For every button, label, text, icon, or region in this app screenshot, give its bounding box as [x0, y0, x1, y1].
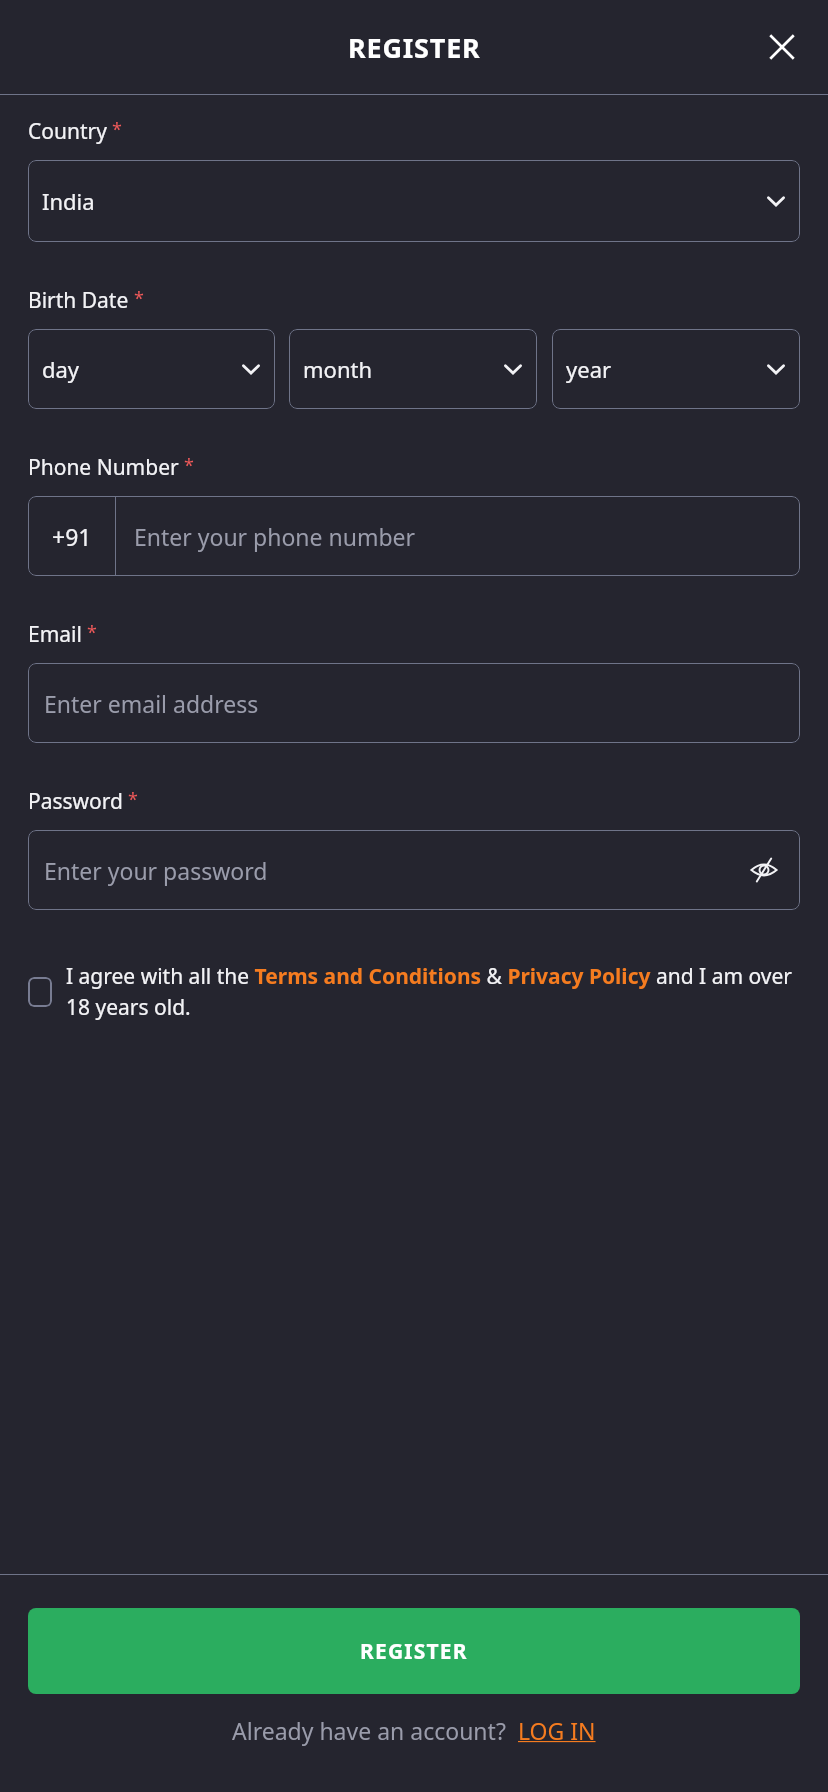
staticText: +91 — [52, 521, 92, 552]
button[interactable]: REGISTER — [28, 1608, 800, 1694]
staticText: REGISTER — [348, 29, 481, 66]
staticText: Enter your phone number — [134, 521, 416, 552]
staticText: Phone Number — [28, 453, 179, 482]
staticText: Already have an account? — [232, 1715, 506, 1746]
staticText: * — [134, 286, 144, 311]
button[interactable]: India — [28, 160, 800, 242]
staticText: * — [87, 620, 97, 645]
button[interactable]: Close — [754, 19, 810, 75]
staticText: Enter email address — [44, 688, 784, 719]
button[interactable]: +91 — [28, 496, 115, 576]
staticText: Country — [28, 117, 107, 146]
staticText: * — [112, 117, 122, 142]
staticText: Enter your password — [44, 855, 744, 886]
staticText: LOG IN — [518, 1715, 596, 1746]
button[interactable]: I agree with all the Terms and Condition… — [28, 962, 800, 1021]
button[interactable]: Enter your password — [28, 830, 800, 910]
staticText: India — [42, 186, 766, 216]
button[interactable]: year — [552, 329, 800, 409]
button[interactable]: day — [28, 329, 275, 409]
staticText: I agree with all the Terms and Condition… — [66, 962, 800, 1021]
staticText: * — [184, 453, 194, 478]
button[interactable]: Enter your phone number — [116, 496, 800, 576]
staticText: day — [42, 354, 241, 384]
staticText: Email — [28, 620, 82, 649]
staticText: Birth Date — [28, 286, 129, 315]
staticText: month — [303, 354, 503, 384]
staticText: * — [128, 787, 138, 812]
button[interactable]: Show password — [744, 850, 784, 890]
button[interactable]: month — [289, 329, 537, 409]
staticText: year — [566, 354, 766, 384]
staticText: Password — [28, 787, 123, 816]
button[interactable]: LOG IN — [518, 1715, 596, 1746]
staticText: REGISTER — [360, 1637, 468, 1666]
button[interactable]: Enter email address — [28, 663, 800, 743]
